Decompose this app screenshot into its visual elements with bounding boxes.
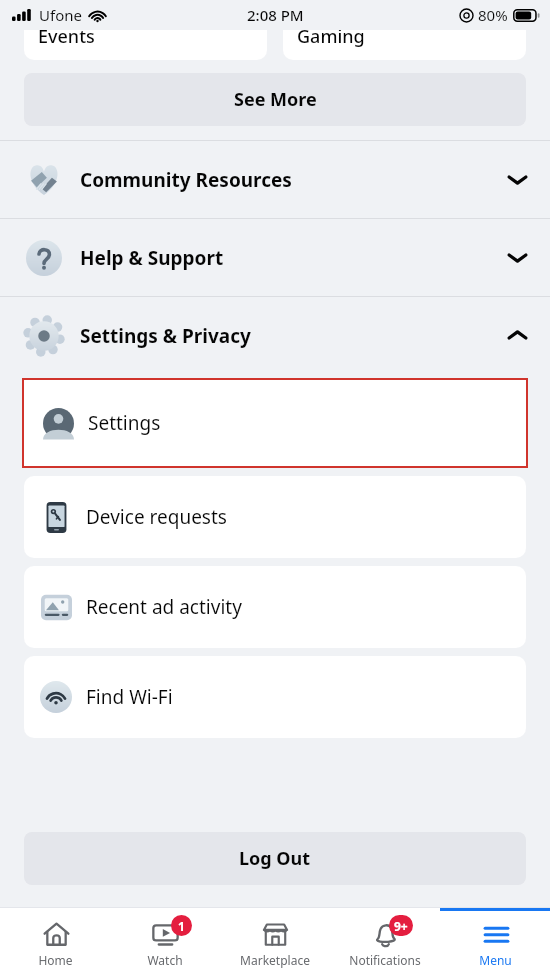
staticText: Gaming (297, 30, 365, 49)
staticText: Recent ad activity (86, 594, 242, 620)
button[interactable]: Log Out (24, 832, 526, 885)
staticText: Events (38, 30, 95, 49)
staticText: Watch (147, 952, 183, 968)
staticText: Ufone (39, 5, 82, 25)
staticText: Community Resources (80, 167, 507, 193)
staticText: See More (234, 87, 317, 112)
button[interactable]: Settings & Privacy (0, 297, 550, 374)
staticText: 9+ (394, 918, 408, 934)
button[interactable]: Notifications (330, 908, 440, 978)
staticText: Device requests (86, 504, 227, 530)
button[interactable]: Watch (110, 908, 220, 978)
button[interactable]: Gaming (283, 30, 526, 60)
button[interactable]: Menu (440, 908, 550, 978)
staticText: Home (38, 952, 73, 968)
staticText: Notifications (349, 952, 421, 968)
button[interactable]: See More (24, 73, 526, 126)
staticText: Find Wi-Fi (86, 684, 173, 710)
button[interactable]: Device requests (24, 476, 526, 558)
staticText: Marketplace (240, 952, 310, 968)
button[interactable]: Recent ad activity (24, 566, 526, 648)
button[interactable]: Help & Support (0, 219, 550, 296)
staticText: Help & Support (80, 245, 507, 271)
button[interactable]: Marketplace (220, 908, 330, 978)
button[interactable]: Community Resources (0, 141, 550, 218)
staticText: Settings & Privacy (80, 323, 507, 349)
staticText: Menu (479, 952, 512, 968)
button[interactable]: Events (24, 30, 267, 60)
button[interactable]: Home (0, 908, 110, 978)
staticText: Settings (88, 410, 161, 436)
button[interactable]: Find Wi-Fi (24, 656, 526, 738)
button[interactable]: Settings (24, 380, 526, 466)
staticText: 1 (178, 918, 185, 934)
staticText: 2:08 PM (247, 5, 304, 25)
staticText: Log Out (239, 846, 311, 871)
staticText: 80% (478, 5, 508, 25)
